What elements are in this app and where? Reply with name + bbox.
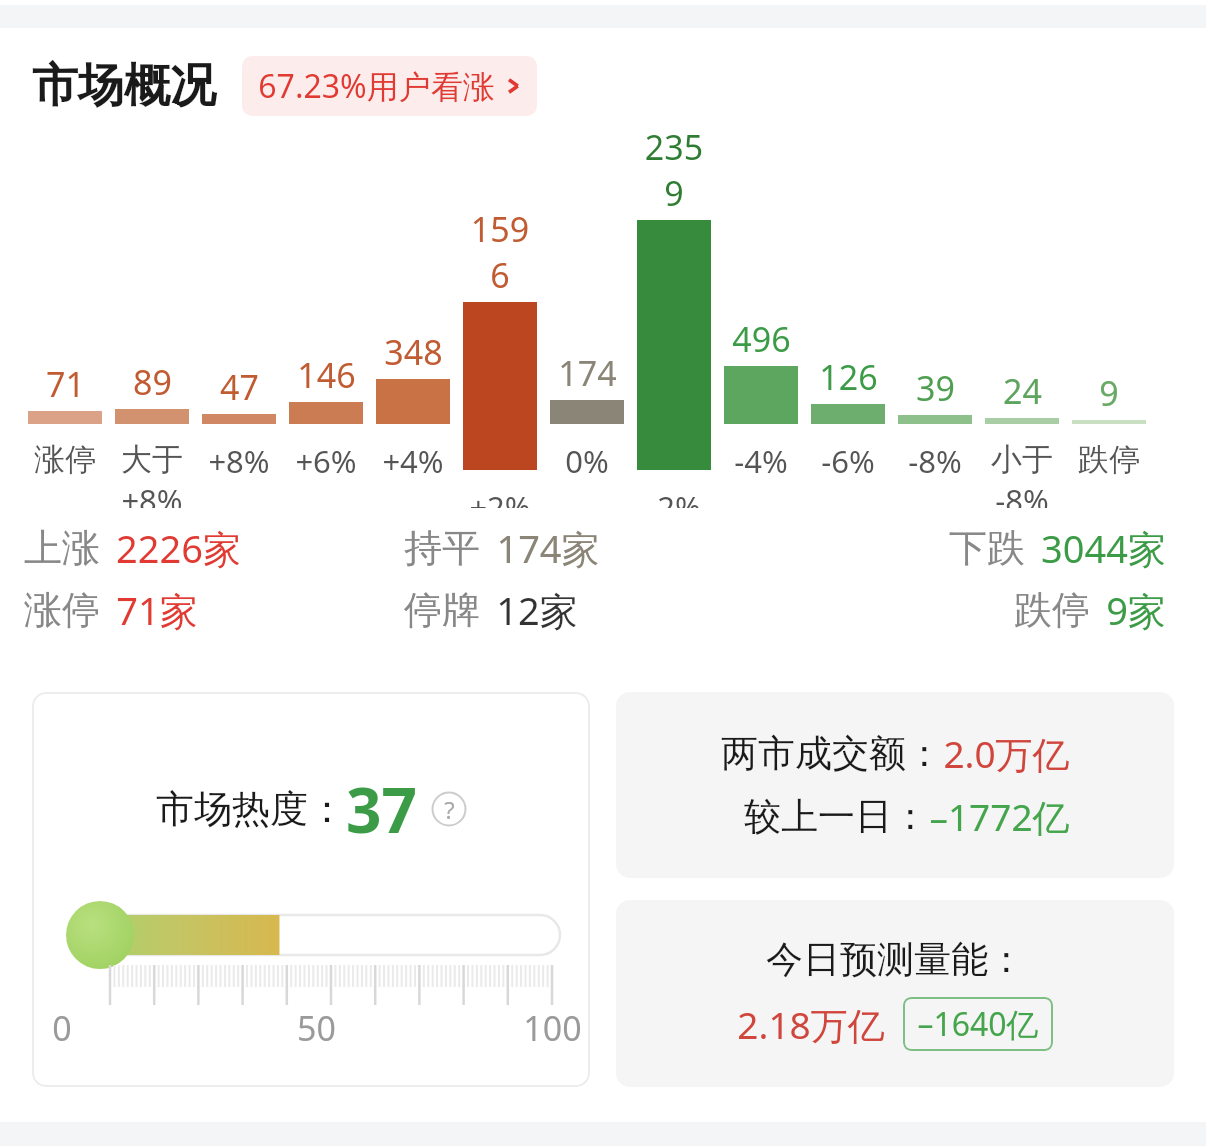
staticText: 37 <box>346 767 417 851</box>
staticText: +2% <box>469 486 531 508</box>
button[interactable]: 71 <box>28 116 102 479</box>
staticText: –1772亿 <box>929 791 1070 842</box>
staticText: 2.18万亿 <box>737 999 885 1050</box>
staticText: 大于 <box>121 440 183 479</box>
staticText: 174 <box>558 350 617 396</box>
staticText: 24 <box>1003 368 1042 414</box>
staticText: 71家 <box>116 584 198 636</box>
staticText: 0 <box>52 1005 72 1051</box>
staticText: 126 <box>819 354 878 400</box>
staticText: –1640亿 <box>917 1002 1039 1046</box>
staticText: 100 <box>523 1005 582 1051</box>
staticText: 较上一日： <box>744 793 929 840</box>
staticText: 小于 <box>991 440 1053 479</box>
staticText: 2226家 <box>116 522 241 574</box>
staticText: 67.23%用户看涨 <box>258 64 495 108</box>
staticText: -6% <box>821 440 875 482</box>
staticText: 2.0万亿 <box>943 728 1070 779</box>
staticText: -4% <box>734 440 788 482</box>
staticText: 涨停 <box>34 440 96 479</box>
staticText: 47 <box>220 364 259 410</box>
staticText: 两市成交额： <box>721 730 943 777</box>
staticText: 50 <box>297 1005 336 1051</box>
staticText: -2% <box>647 486 701 508</box>
staticText: 下跌 <box>949 524 1025 572</box>
button[interactable]: 9 <box>1072 116 1146 479</box>
staticText: 348 <box>384 329 443 375</box>
staticText: 0% <box>565 440 609 482</box>
staticText: 12家 <box>496 584 578 636</box>
staticText: 2359 <box>637 124 711 216</box>
button[interactable]: 67.23%用户看涨 <box>242 56 537 116</box>
staticText: 9家 <box>1106 584 1166 636</box>
staticText: 跌停 <box>1078 440 1140 479</box>
button[interactable]: 496 <box>724 116 798 482</box>
staticText: 跌停 <box>1014 586 1090 634</box>
staticText: 496 <box>732 316 791 362</box>
button[interactable]: 348 <box>376 116 450 482</box>
button[interactable]: 市场热度： <box>32 692 590 1087</box>
button[interactable]: 47 <box>202 116 276 482</box>
button[interactable]: 今日预测量能： <box>616 900 1174 1087</box>
button[interactable]: 89 <box>115 116 189 508</box>
button[interactable]: 2359 <box>637 116 711 508</box>
button[interactable]: 两市成交额： <box>616 692 1174 878</box>
staticText: 停牌 <box>404 586 480 634</box>
staticText: -8% <box>908 440 962 482</box>
staticText: 174家 <box>496 522 600 574</box>
button[interactable]: 174 <box>550 116 624 482</box>
staticText: +6% <box>295 440 357 482</box>
button[interactable]: 1596 <box>463 116 537 508</box>
staticText: +4% <box>382 440 444 482</box>
staticText: +8% <box>208 440 270 482</box>
staticText: 涨停 <box>24 586 100 634</box>
staticText: -8% <box>995 479 1049 508</box>
staticText: 持平 <box>404 524 480 572</box>
staticText: 市场热度： <box>156 785 346 833</box>
staticText: 89 <box>133 359 172 405</box>
staticText: 39 <box>916 365 955 411</box>
staticText: 1596 <box>463 206 537 298</box>
button[interactable]: 39 <box>898 116 972 482</box>
staticText: 146 <box>297 352 356 398</box>
button[interactable]: 146 <box>289 116 363 482</box>
staticText: 市场概况 <box>32 57 216 115</box>
staticText: +8% <box>121 479 183 508</box>
button[interactable]: 24 <box>985 116 1059 508</box>
staticText: 71 <box>46 361 85 407</box>
button[interactable]: 126 <box>811 116 885 482</box>
staticText: 3044家 <box>1041 522 1166 574</box>
staticText: 今日预测量能： <box>766 936 1025 983</box>
staticText: 上涨 <box>24 524 100 572</box>
button[interactable]: 帮助 <box>431 791 467 827</box>
staticText: ? <box>444 793 455 826</box>
staticText: 9 <box>1099 370 1119 416</box>
